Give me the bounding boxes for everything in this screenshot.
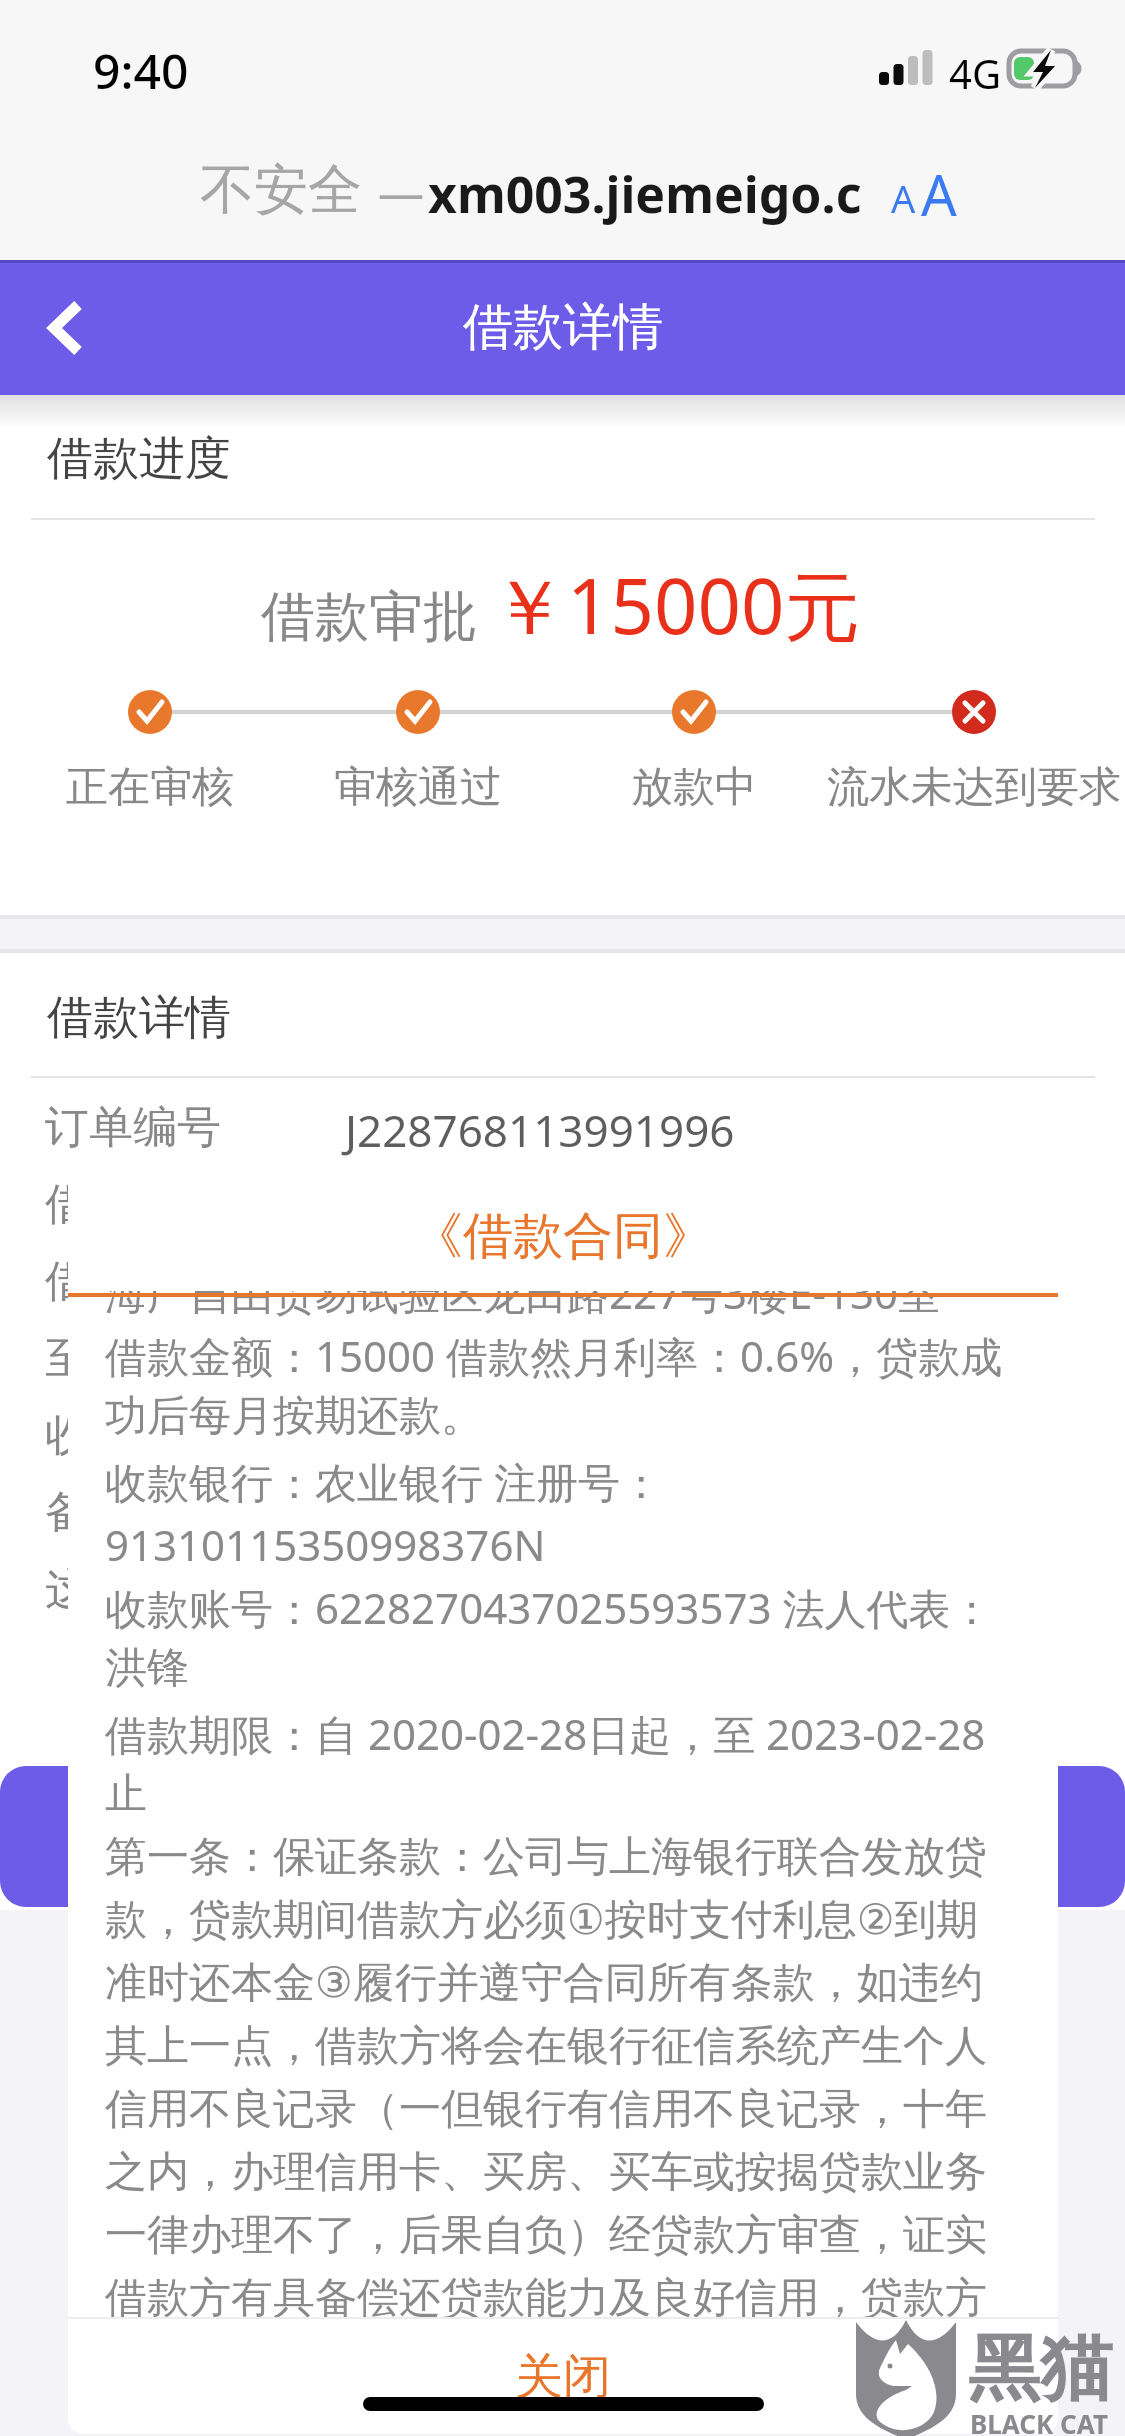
staticText: 36期 (345, 1254, 440, 1314)
staticText: 91310115350998376N (105, 1516, 546, 1573)
staticText: 第一条：保证条款：公司与上海银行联合发放贷 (105, 1831, 987, 1884)
staticText: 借款金额：15000 借款然月利率：0.6%，贷款成 (105, 1327, 1003, 1384)
staticText: ￥15000元 (491, 553, 861, 657)
staticText: 准时还本金③履行并遵守合同所有条款，如违约 (105, 1957, 983, 2010)
staticText: 黑猫 (968, 2324, 1112, 2415)
staticText: 流水未达到要求 (827, 761, 1121, 814)
staticText: 海广自由贸易试验区龙田路227号3楼E-130室 (105, 1291, 941, 1321)
button[interactable]: 关闭 (68, 2319, 1058, 2434)
staticText: 收款银行：农业银行 注册号： (105, 1453, 662, 1510)
staticText: 洪锋 (105, 1642, 189, 1695)
staticText: BLACK CAT (970, 2406, 1108, 2436)
staticText: 借款金额 (45, 1177, 221, 1232)
staticText: 借款期限 (45, 1254, 221, 1309)
staticText: A (921, 156, 957, 232)
staticText: 借款详情 (463, 296, 663, 359)
staticText: 借款进度 (47, 430, 231, 488)
staticText: 收款银行 (45, 1408, 221, 1463)
staticText: 无 (345, 1485, 389, 1540)
staticText: 9:40 (93, 38, 189, 103)
staticText: 正在审核 (66, 761, 234, 814)
staticText: 至还款日 (45, 1331, 221, 1386)
staticText: 《借款合同》 (68, 1205, 1058, 1268)
staticText: 一律办理不了，后果自负）经贷款方审查，证实 (105, 2209, 987, 2262)
staticText: 其上一点，借款方将会在银行征信系统产生个人 (105, 2020, 987, 2073)
staticText: 订单编号 (45, 1100, 221, 1155)
staticText: — (378, 160, 424, 223)
staticText: 不安全 (200, 156, 362, 224)
staticText: 关闭 (515, 2347, 611, 2407)
staticText: 15000元 (345, 1177, 515, 1237)
staticText: 功后每月按期还款。 (105, 1390, 483, 1443)
staticText: 借款方有具备偿还贷款能力及良好信用，贷款方 (105, 2272, 987, 2317)
staticText: 止 (105, 1768, 147, 1821)
button[interactable] (0, 1766, 1125, 1907)
staticText: 审核通过 (334, 761, 502, 814)
staticText: 借款审批 (261, 583, 477, 651)
staticText: 借款期限：自 2020-02-28日起，至 2023-02-28 (105, 1705, 986, 1762)
button[interactable]: Back (0, 260, 130, 395)
staticText: 款，贷款期间借款方必须①按时支付利息②到期 (105, 1894, 979, 1947)
staticText: 备注信息 (45, 1485, 221, 1540)
staticText: 这个订单 (45, 1562, 221, 1617)
staticText: 之内，办理信用卡、买房、买车或按揭贷款业务 (105, 2146, 987, 2199)
staticText: 信用不良记录（一但银行有信用不良记录，十年 (105, 2083, 987, 2136)
staticText: 收款账号：6228270437025593573 法人代表： (105, 1579, 993, 1636)
staticText: xm003.jiemeigo.c (428, 160, 862, 228)
staticText: 2023-02-28 (345, 1331, 575, 1391)
staticText: 放款中 (631, 761, 757, 814)
staticText: 借款详情 (47, 989, 231, 1047)
staticText: J228768113991996 (345, 1100, 735, 1160)
staticText: A (891, 172, 916, 224)
staticText: 4G (949, 46, 1001, 100)
staticText: 农业银行 (345, 1408, 521, 1463)
